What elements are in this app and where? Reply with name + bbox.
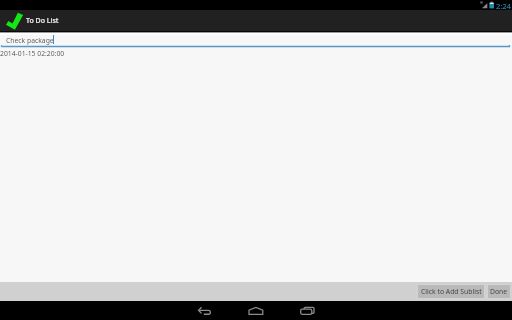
staticText: To Do List (26, 16, 59, 26)
staticText: Click to Add Sublist (421, 287, 482, 296)
button[interactable]: Click to Add Sublist (418, 285, 484, 298)
button[interactable]: Done (488, 285, 510, 298)
button[interactable]: Back (186, 301, 224, 320)
staticText: 2:24 (496, 1, 511, 11)
button[interactable]: Check package (0, 35, 512, 48)
button[interactable]: Home (238, 301, 274, 320)
button[interactable]: 2014-01-15 02:20:00 (0, 48, 512, 58)
staticText: 2014-01-15 02:20:00 (0, 49, 65, 58)
button[interactable]: Recent apps (290, 301, 326, 320)
button[interactable]: To Do List (0, 10, 64, 31)
staticText: Done (490, 287, 508, 296)
staticText: Check package (6, 36, 54, 45)
